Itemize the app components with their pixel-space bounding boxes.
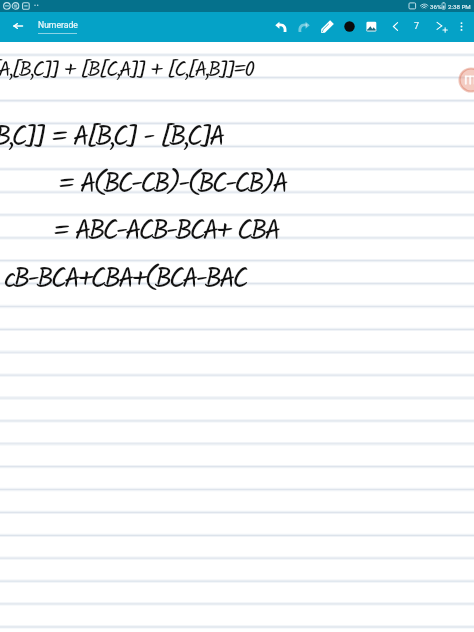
button[interactable]: Pen [316,15,338,37]
button[interactable]: Previous page [384,15,406,37]
button[interactable]: Numerade [36,15,78,38]
staticText: cB-BCA+CBA+(BCA-BAC [4,258,246,301]
staticText: 2:38 PM [448,3,471,10]
staticText: [B,C]] = A[B,C] - [B,C]A [0,116,223,159]
staticText: 7 [414,21,420,32]
staticText: Numerade [38,20,78,30]
button[interactable]: Pen colour [338,15,360,37]
staticText: = ABC-ACB-BCA+ CBA [53,210,278,253]
staticText: 36% [430,3,442,10]
button[interactable]: Undo [270,15,292,37]
button[interactable]: Add page [430,15,452,37]
staticText: = A(BC-CB)-(BC-CB)A [58,163,286,206]
staticText: [A,[B,C]] + [B[C,A]] + [C,[A,B]]=0 [0,54,253,87]
button[interactable]: Redo [292,15,314,37]
button[interactable]: Insert image [360,15,382,37]
button[interactable]: More options [450,15,472,37]
button[interactable]: Back [7,15,29,37]
button[interactable]: 7 [406,15,428,37]
